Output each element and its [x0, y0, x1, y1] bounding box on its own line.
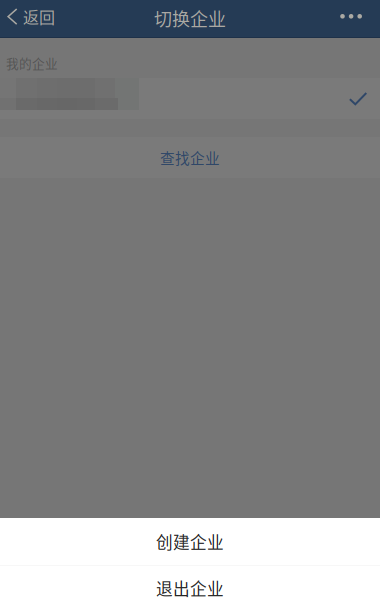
button[interactable] — [0, 78, 380, 119]
button[interactable]: 创建企业 — [0, 518, 380, 565]
button[interactable]: 查找企业 — [0, 137, 380, 178]
staticText: 返回 — [23, 5, 55, 28]
button[interactable]: 返回 — [0, 0, 65, 38]
staticText: 切换企业 — [154, 5, 226, 31]
staticText: 我的企业 — [6, 54, 58, 72]
staticText: 创建企业 — [156, 529, 224, 553]
staticText: 退出企业 — [156, 576, 224, 600]
staticText: 查找企业 — [160, 147, 220, 168]
button[interactable]: 退出企业 — [0, 566, 380, 605]
button[interactable]: 更多 — [340, 0, 380, 38]
